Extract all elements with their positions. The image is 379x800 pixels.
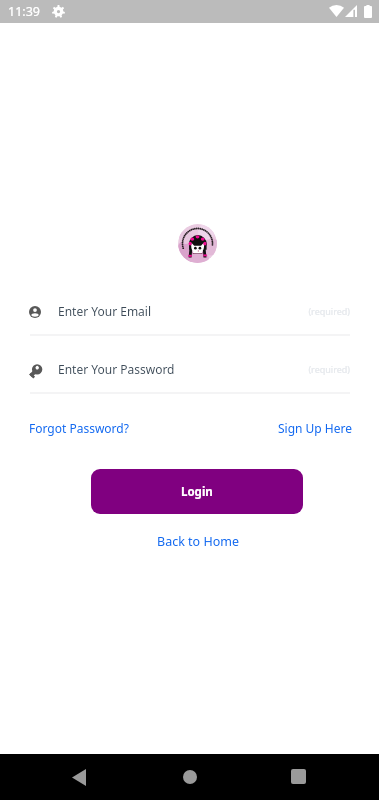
button[interactable]: Back to Home: [157, 530, 239, 553]
staticText: Forgot Password?: [29, 420, 129, 436]
staticText: 11:39: [8, 3, 40, 20]
button[interactable]: Login: [91, 469, 303, 514]
staticText: Enter Your Email: [58, 303, 152, 319]
button[interactable]: Enter Your Email: [0, 296, 379, 336]
other: Settings: [52, 5, 65, 18]
staticText: Sign Up Here: [278, 420, 353, 436]
button[interactable]: Sign Up Here: [278, 417, 353, 439]
button[interactable]: Forgot Password?: [29, 417, 129, 439]
button[interactable]: Enter Your Password: [0, 354, 379, 394]
staticText: (required): [0, 363, 350, 375]
button[interactable]: Home: [183, 770, 197, 784]
button[interactable]: Recent apps: [291, 769, 306, 784]
staticText: Login: [181, 484, 213, 500]
button[interactable]: Back: [72, 769, 86, 786]
staticText: (required): [0, 305, 350, 317]
staticText: Back to Home: [157, 533, 239, 550]
staticText: Enter Your Password: [58, 361, 175, 377]
